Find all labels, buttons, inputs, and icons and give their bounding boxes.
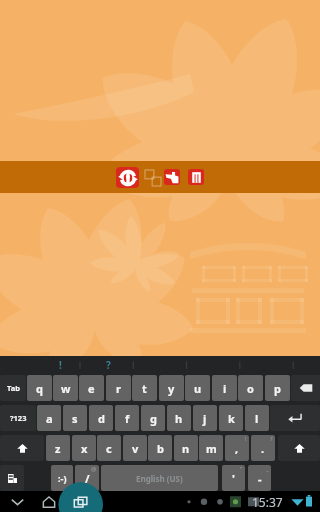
staticText: k [228, 411, 235, 426]
button[interactable] [291, 375, 320, 401]
button[interactable]: h [167, 405, 191, 431]
button[interactable] [0, 435, 44, 461]
button[interactable]: f [115, 405, 139, 431]
button[interactable]: , [225, 435, 249, 461]
button[interactable]: l [245, 405, 269, 431]
staticText: v [132, 441, 139, 456]
staticText: Tab [7, 383, 20, 393]
button[interactable]: y [159, 375, 184, 401]
staticText: e [88, 381, 95, 396]
staticText: h [175, 411, 183, 426]
staticText: o [247, 381, 254, 396]
button[interactable]: s [63, 405, 87, 431]
button[interactable]: n [174, 435, 198, 461]
button[interactable]: / [75, 465, 99, 491]
staticText: 15:37 [252, 494, 283, 510]
staticText: ? [106, 358, 111, 372]
staticText: m [206, 441, 217, 456]
button[interactable]: :-) [51, 465, 73, 491]
staticText: ?123 [10, 413, 27, 423]
button[interactable]: Delete [188, 169, 204, 185]
staticText: ' [232, 471, 235, 486]
button[interactable]: Recents [70, 491, 92, 512]
staticText: w [61, 381, 71, 396]
button[interactable]: i [212, 375, 237, 401]
button[interactable] [278, 435, 320, 461]
button[interactable]: j [193, 405, 217, 431]
staticText: z [55, 441, 61, 456]
button[interactable]: English (US) [101, 465, 218, 491]
button[interactable]: t [132, 375, 157, 401]
staticText: x [81, 441, 88, 456]
staticText: p [274, 381, 281, 396]
button[interactable]: Paste [164, 169, 180, 185]
button[interactable]: . [251, 435, 275, 461]
staticText: c [106, 441, 112, 456]
button[interactable]: ! [0, 356, 320, 374]
staticText: b [157, 441, 164, 456]
button[interactable]: g [141, 405, 165, 431]
button[interactable]: c [97, 435, 121, 461]
button[interactable] [270, 405, 320, 431]
staticText: :-) [58, 472, 67, 484]
button[interactable]: w [53, 375, 78, 401]
staticText: l [255, 411, 259, 426]
button[interactable]: u [185, 375, 210, 401]
staticText: ? [270, 435, 273, 443]
button[interactable]: p [265, 375, 290, 401]
staticText: f [125, 411, 130, 426]
staticText: n [182, 441, 190, 456]
button[interactable]: Home [38, 491, 60, 512]
button[interactable]: m [199, 435, 223, 461]
staticText: i [223, 381, 227, 396]
staticText: d [98, 411, 105, 426]
button[interactable]: o [238, 375, 263, 401]
staticText: q [36, 381, 43, 396]
staticText: / [85, 471, 90, 486]
button[interactable]: q [27, 375, 52, 401]
staticText: g [150, 411, 157, 426]
staticText: _ [266, 465, 269, 473]
staticText: u [194, 381, 202, 396]
button[interactable]: b [148, 435, 172, 461]
staticText: . [261, 441, 265, 456]
button[interactable]: x [72, 435, 96, 461]
button[interactable]: r [106, 375, 131, 401]
button[interactable] [0, 465, 24, 491]
button[interactable]: ?123 [0, 405, 36, 431]
staticText: s [72, 411, 78, 426]
button[interactable]: Rotate [116, 167, 139, 188]
staticText: ! [245, 435, 247, 443]
staticText: j [203, 411, 207, 426]
staticText: y [168, 381, 175, 396]
button[interactable]: Back [6, 491, 28, 512]
staticText: " [240, 465, 243, 473]
staticText: r [116, 381, 121, 396]
staticText: t [142, 381, 147, 396]
staticText: , [235, 441, 239, 456]
button[interactable]: Copy [144, 169, 162, 186]
button[interactable]: Status icons [186, 495, 246, 508]
button[interactable]: k [219, 405, 243, 431]
staticText: @ [91, 465, 97, 473]
staticText: - [258, 471, 262, 486]
button[interactable]: z [46, 435, 70, 461]
button[interactable]: a [37, 405, 61, 431]
button[interactable]: v [123, 435, 147, 461]
button[interactable]: d [89, 405, 113, 431]
staticText: English (US) [136, 473, 183, 484]
button[interactable]: e [79, 375, 104, 401]
staticText: ! [59, 358, 62, 372]
staticText: a [46, 411, 53, 426]
button[interactable]: ' [222, 465, 245, 491]
button[interactable]: Tab [0, 375, 26, 401]
button[interactable]: - [248, 465, 271, 491]
